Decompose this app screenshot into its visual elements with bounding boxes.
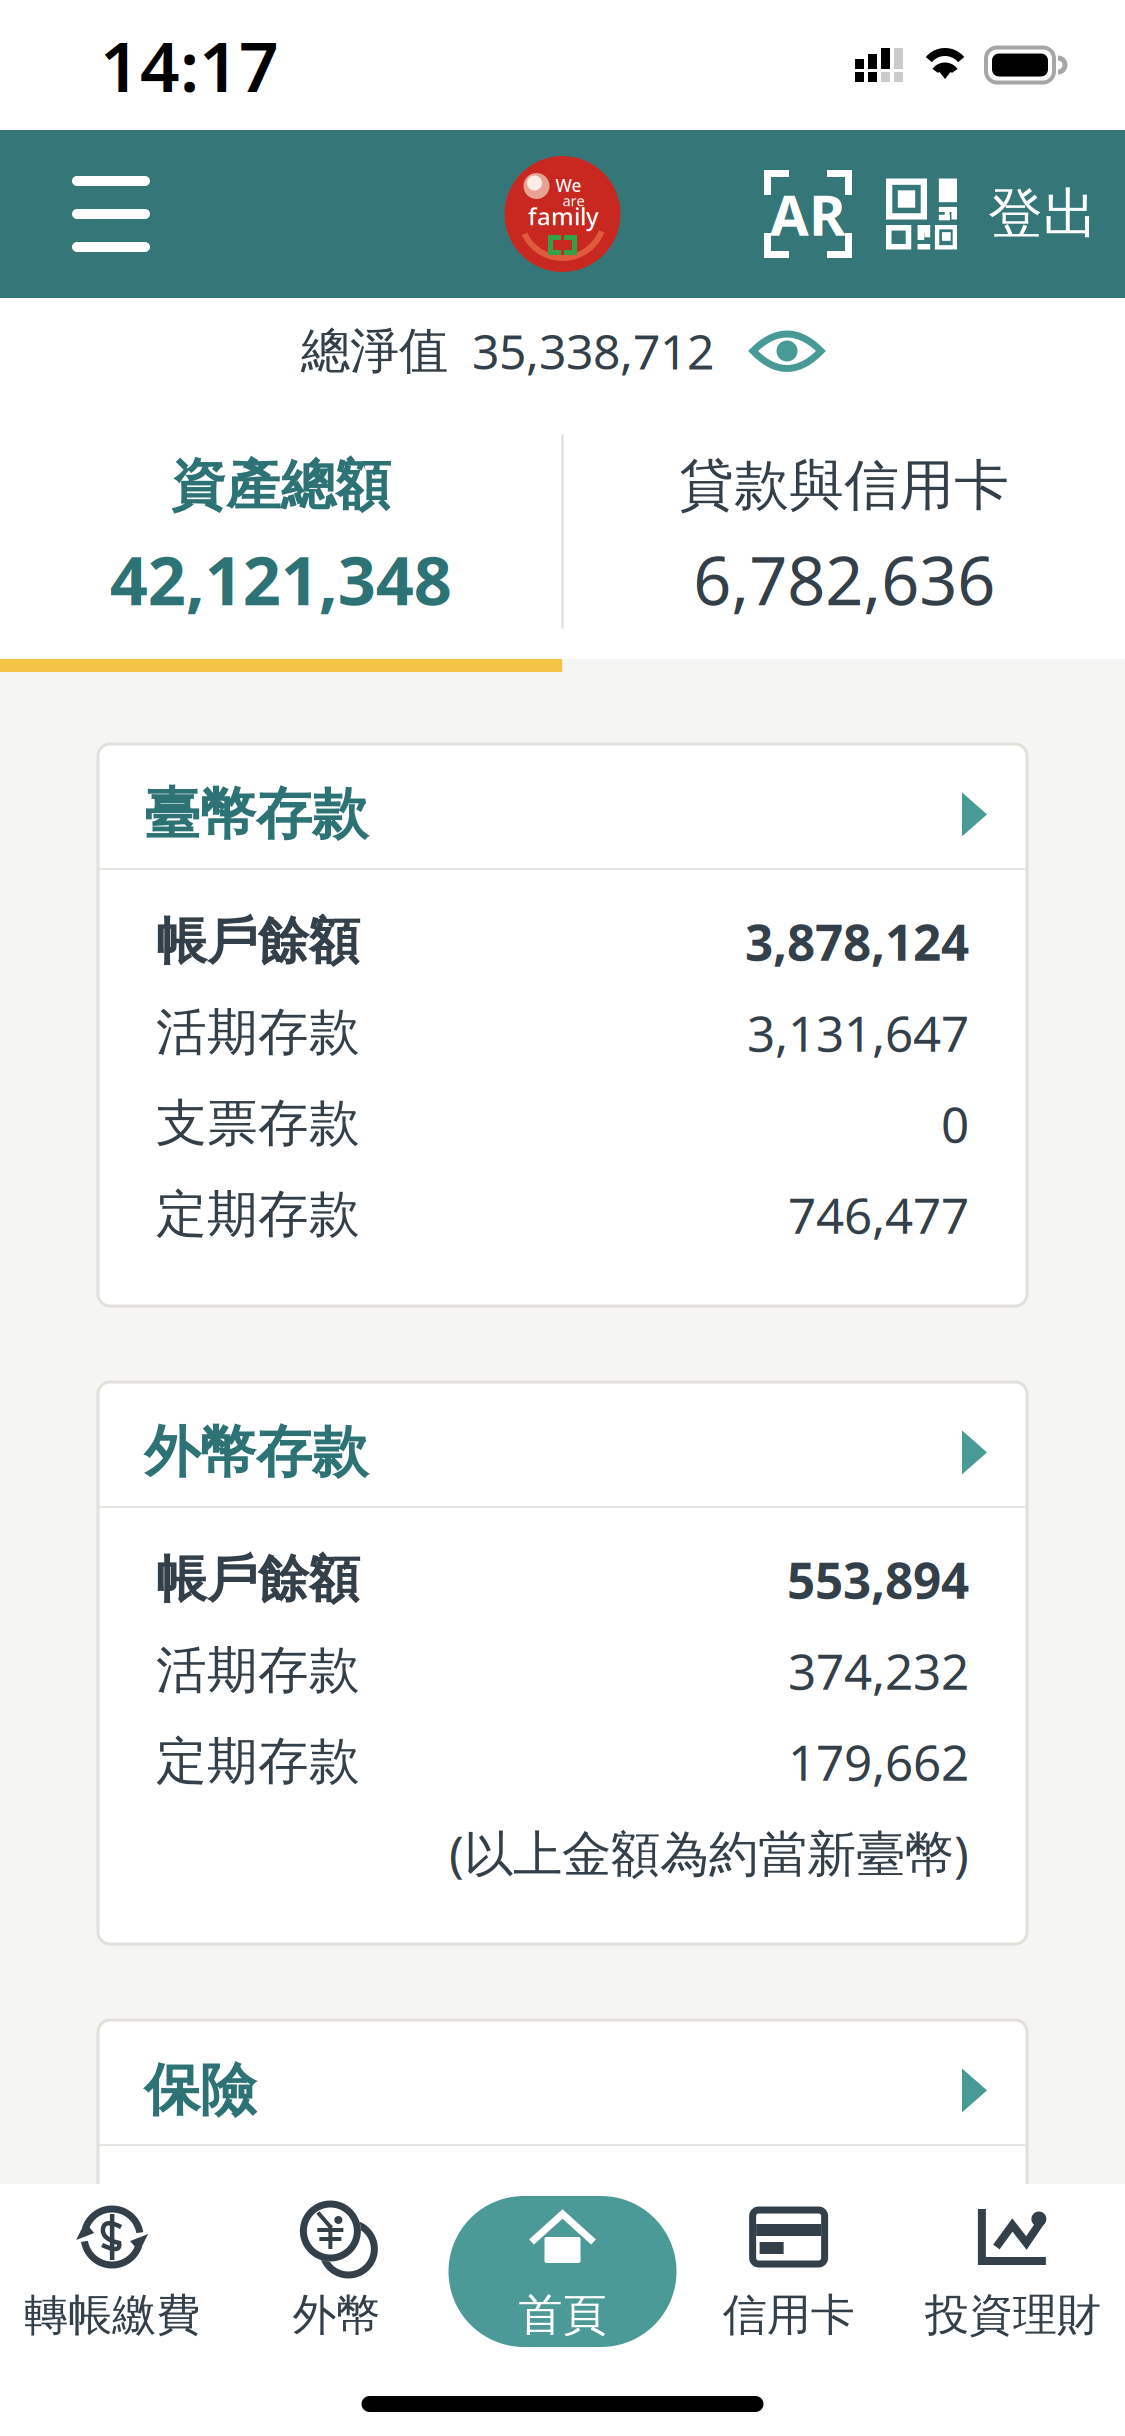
button[interactable]: 資產總額 xyxy=(0,404,561,659)
button[interactable]: 首頁 xyxy=(448,2196,676,2347)
staticText: We xyxy=(555,174,581,197)
staticText: 外幣存款 xyxy=(144,1418,368,1487)
staticText: 壽險保額 xyxy=(156,2277,360,2340)
staticText: (以上金額為約當新臺幣) xyxy=(449,1820,969,1885)
button[interactable]: 登出 xyxy=(957,130,1098,298)
staticText: 帳戶餘額 xyxy=(156,1548,360,1611)
staticText: 179,662 xyxy=(788,1729,969,1794)
staticText: 資產總額 xyxy=(171,452,391,519)
staticText: family xyxy=(528,200,599,232)
staticText: 登出 xyxy=(988,180,1098,247)
staticText: 14:17 xyxy=(100,19,279,111)
staticText: 3,878,124 xyxy=(745,909,969,974)
button[interactable]: 投資理財 xyxy=(901,2196,1125,2347)
button[interactable]: 總淨值 xyxy=(0,298,1125,404)
staticText: 臺幣存款 xyxy=(144,780,368,849)
staticText: 外幣 xyxy=(292,2288,380,2342)
button[interactable]: Menu xyxy=(0,130,190,298)
staticText: 定期存款 xyxy=(156,1183,360,1246)
staticText: 總淨值 xyxy=(301,321,448,381)
button[interactable]: AR view xyxy=(764,130,852,298)
button[interactable]: 保險 xyxy=(98,2020,1027,2144)
staticText: 貸款與信用卡 xyxy=(679,452,1009,519)
staticText: 保單價值 xyxy=(156,2186,360,2249)
button[interactable]: 臺幣存款 xyxy=(98,744,1027,868)
staticText: 553,894 xyxy=(787,1547,969,1612)
button[interactable]: 信用卡 xyxy=(676,2196,901,2347)
button[interactable]: Scan QR code xyxy=(852,130,957,298)
staticText: 6,782,636 xyxy=(693,535,995,624)
button[interactable]: 貸款與信用卡 xyxy=(563,404,1125,659)
staticText: 活期存款 xyxy=(156,1639,360,1702)
staticText: 35,338,712 xyxy=(472,319,714,383)
staticText: 定期存款 xyxy=(156,1730,360,1793)
button[interactable]: 外幣 xyxy=(224,2196,448,2347)
staticText: 746,477 xyxy=(788,1182,969,1247)
staticText: 保險 xyxy=(144,2056,256,2125)
staticText: 投資理財 xyxy=(925,2288,1101,2342)
staticText: 信用卡 xyxy=(723,2288,855,2342)
staticText: 活期存款 xyxy=(156,1001,360,1064)
staticText: 轉帳繳費 xyxy=(24,2288,200,2342)
staticText: 0 xyxy=(941,1091,969,1156)
staticText: 3,131,647 xyxy=(747,1000,969,1065)
staticText: are xyxy=(562,191,584,210)
staticText: 374,232 xyxy=(788,1638,969,1703)
button[interactable]: 轉帳繳費 xyxy=(0,2196,224,2347)
button[interactable]: 外幣存款 xyxy=(98,1382,1027,1506)
staticText: 帳戶餘額 xyxy=(156,910,360,973)
staticText: 支票存款 xyxy=(156,1092,360,1155)
staticText: 1,280,000 xyxy=(745,2185,969,2250)
staticText: 首頁 xyxy=(518,2288,606,2342)
staticText: AR xyxy=(770,177,846,251)
staticText: 5,000,000 xyxy=(747,2276,969,2341)
staticText: 42,121,348 xyxy=(110,535,452,624)
